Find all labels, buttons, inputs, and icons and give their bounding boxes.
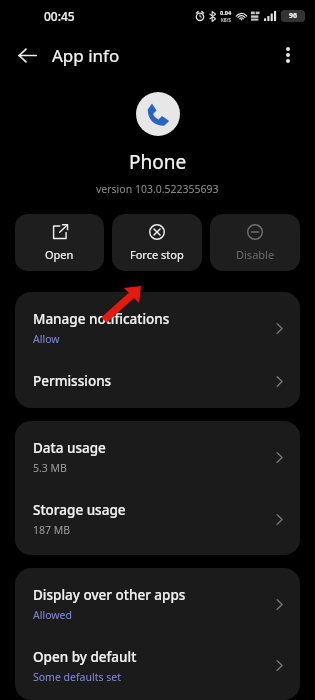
button[interactable]: Data usage	[15, 426, 300, 488]
staticText: Allowed	[33, 608, 72, 622]
staticText: version 103.0.522355693	[96, 182, 219, 196]
button[interactable]: Open	[15, 214, 104, 271]
staticText: Open	[45, 247, 74, 262]
staticText: Phone	[129, 149, 187, 175]
button[interactable]: Back	[7, 35, 47, 75]
staticText: Storage usage	[33, 501, 126, 519]
staticText: Some defaults set	[33, 670, 121, 682]
staticText: Data usage	[33, 439, 106, 457]
button[interactable]: Permissions	[15, 359, 300, 403]
button[interactable]: More options	[270, 37, 306, 73]
button[interactable]: Force stop	[112, 214, 202, 271]
staticText: Allow	[33, 332, 60, 346]
staticText: Permissions	[33, 372, 112, 390]
staticText: 96	[289, 11, 298, 21]
button[interactable]: Storage usage	[15, 488, 300, 550]
button[interactable]: Disable	[210, 214, 300, 271]
staticText: Force stop	[130, 247, 184, 262]
staticText: 5.3 MB	[33, 461, 67, 475]
staticText: App info	[52, 44, 120, 67]
button[interactable]: Display over other apps	[15, 573, 300, 635]
staticText: 00:45	[44, 8, 75, 24]
staticText: Manage notifications	[33, 310, 170, 328]
staticText: Open by default	[33, 648, 137, 666]
staticText: 187 MB	[33, 523, 71, 537]
button[interactable]: Open by default	[15, 635, 300, 695]
staticText: Display over other apps	[33, 586, 186, 604]
staticText: KB/S	[221, 17, 231, 23]
button[interactable]: Manage notifications	[15, 297, 300, 359]
staticText: Disable	[236, 247, 275, 262]
staticText: 0.04	[220, 9, 232, 17]
